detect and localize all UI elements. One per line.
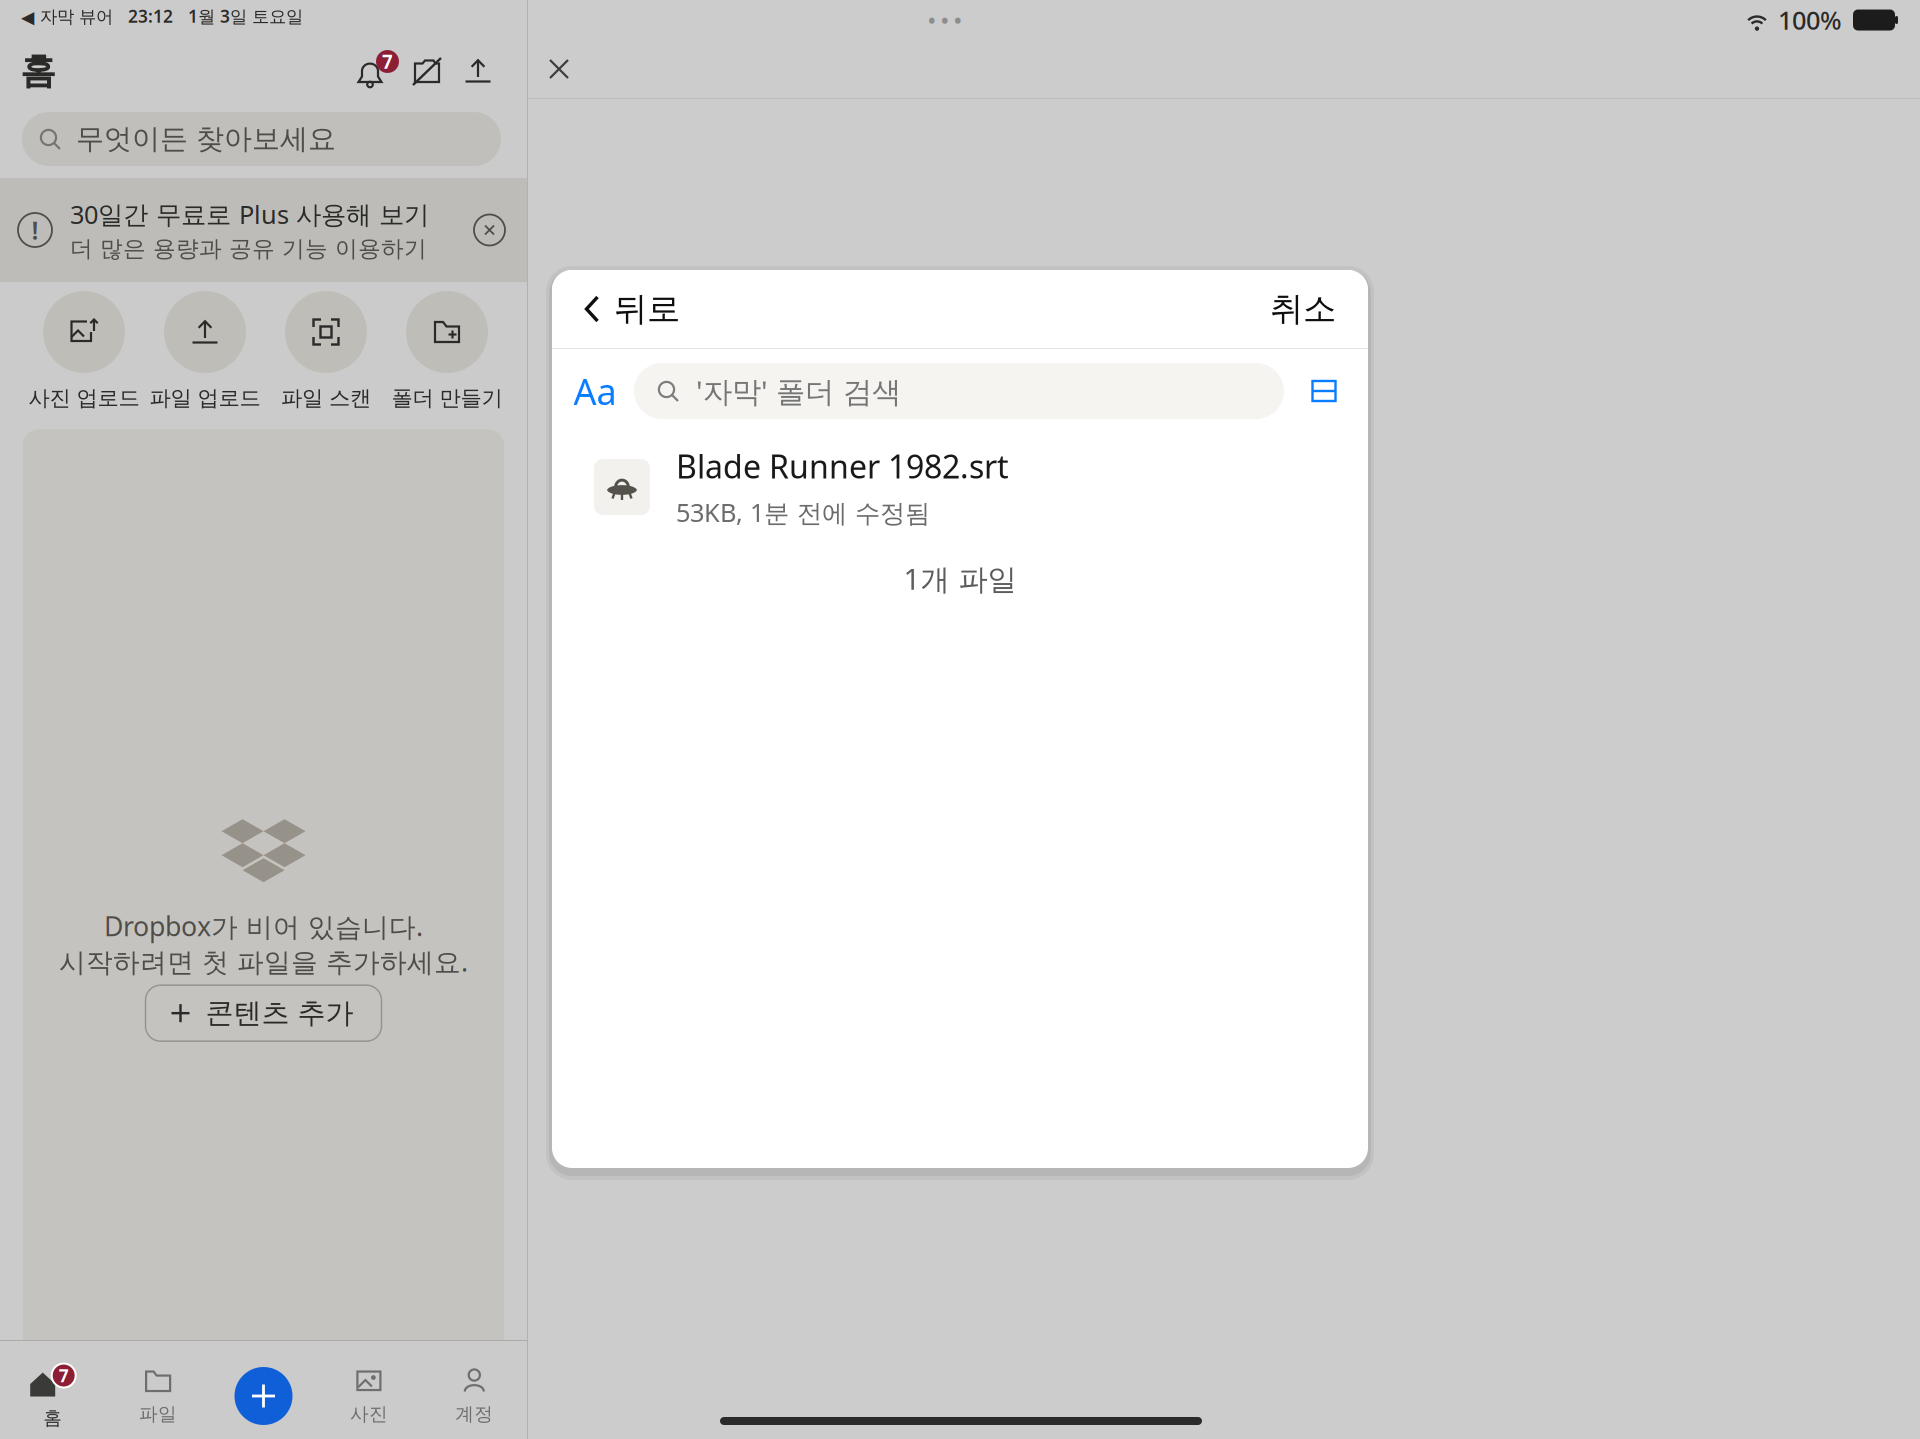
button[interactable]: 폴더 만들기 xyxy=(386,291,507,413)
staticText: 파일 xyxy=(139,1402,177,1425)
staticText: 폴더 만들기 xyxy=(391,385,502,411)
staticText: Aa xyxy=(573,367,616,415)
staticText: 뒤로 xyxy=(614,288,680,329)
button[interactable]: 사진 업로드 xyxy=(23,291,144,413)
staticText: 7 xyxy=(59,1364,69,1387)
staticText: 무엇이든 찾아보세요 xyxy=(76,122,336,156)
staticText: '자막' 폴더 검색 xyxy=(696,371,901,410)
button[interactable]: 계정 xyxy=(422,1359,527,1433)
button[interactable]: 무엇이든 찾아보세요 xyxy=(22,112,501,166)
button[interactable]: 콘텐츠 추가 xyxy=(145,985,381,1041)
staticText: • • • xyxy=(928,7,962,33)
button[interactable]: Blade Runner 1982.srt xyxy=(552,439,1368,535)
button[interactable]: 파일 업로드 xyxy=(144,291,265,413)
button[interactable]: 새로 만들기 xyxy=(399,49,455,93)
staticText: 홈 xyxy=(43,1406,62,1429)
staticText: 파일 스캔 xyxy=(281,385,371,411)
button[interactable]: 뒤로 xyxy=(552,270,694,348)
staticText: 파일 업로드 xyxy=(149,385,260,411)
staticText: Dropbox가 비어 있습니다. xyxy=(104,908,423,944)
button[interactable]: 7 xyxy=(0,1359,105,1433)
staticText: 홈 xyxy=(20,49,56,93)
staticText: 7 xyxy=(382,49,393,74)
staticText: ! xyxy=(31,213,38,247)
staticText: 53KB, 1분 전에 수정됨 xyxy=(676,495,930,529)
button[interactable]: 텍스트 크기 xyxy=(556,361,634,421)
staticText: 더 많은 용량과 공유 기능 이용하기 xyxy=(70,235,427,263)
staticText: 30일간 무료로 Plus 사용해 보기 xyxy=(70,197,429,231)
button[interactable]: 파일 스캔 xyxy=(265,291,386,413)
staticText: 시작하려면 첫 파일을 추가하세요. xyxy=(59,944,468,979)
staticText: 1개 파일 xyxy=(903,559,1016,598)
staticText: 콘텐츠 추가 xyxy=(205,996,353,1030)
staticText: 100% xyxy=(1778,3,1842,37)
staticText: 사진 업로드 xyxy=(28,385,139,411)
button[interactable]: 사진 xyxy=(316,1359,422,1433)
staticText: ◀ 자막 뷰어 23:12 1월 3일 토요일 xyxy=(21,4,303,27)
button[interactable]: 업로드 xyxy=(455,49,501,93)
button[interactable]: 파일 xyxy=(105,1359,211,1433)
staticText: 계정 xyxy=(455,1402,493,1425)
button[interactable]: 닫기 xyxy=(528,40,590,98)
staticText: 사진 xyxy=(350,1402,388,1425)
button[interactable]: 만들기 xyxy=(211,1359,316,1433)
staticText: Blade Runner 1982.srt xyxy=(676,445,1009,487)
button[interactable]: 보기 방식 xyxy=(1284,361,1364,421)
button[interactable]: 알림 xyxy=(355,49,399,93)
button[interactable]: ! xyxy=(0,178,527,282)
button[interactable]: 취소 xyxy=(1252,270,1368,348)
staticText: 취소 xyxy=(1270,288,1336,329)
